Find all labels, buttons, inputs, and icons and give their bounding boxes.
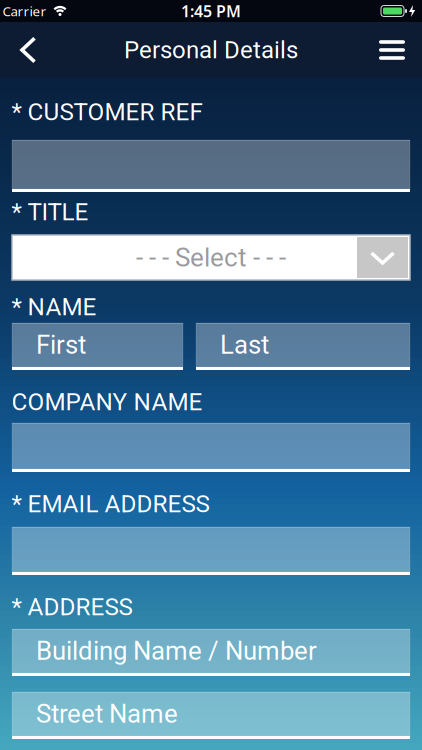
staticText: COMPANY NAME: [11, 388, 202, 416]
staticText: Street Name: [36, 699, 178, 729]
staticText: * CUSTOMER REF: [11, 98, 202, 126]
button[interactable]: Building Name / Number: [12, 629, 410, 676]
staticText: * NAME: [11, 293, 96, 321]
button[interactable]: Menu: [367, 40, 422, 60]
button[interactable]: Street Name: [12, 692, 410, 739]
staticText: Personal Details: [124, 36, 298, 64]
button[interactable]: Email Address: [12, 527, 410, 575]
button[interactable]: Select title: [12, 235, 410, 280]
staticText: - - - Select - - -: [136, 242, 286, 273]
button[interactable]: Last: [196, 323, 410, 370]
staticText: Building Name / Number: [36, 636, 317, 666]
staticText: Carrier: [2, 2, 46, 20]
staticText: * ADDRESS: [11, 593, 132, 621]
button[interactable]: Company Name: [12, 423, 410, 472]
button[interactable]: Back: [0, 36, 49, 63]
staticText: Last: [220, 330, 269, 360]
staticText: * EMAIL ADDRESS: [11, 490, 209, 518]
button[interactable]: First: [12, 323, 183, 370]
button[interactable]: Customer Ref: [12, 140, 410, 192]
staticText: * TITLE: [11, 198, 88, 226]
staticText: First: [36, 330, 86, 360]
staticText: 1:45 PM: [181, 0, 241, 22]
